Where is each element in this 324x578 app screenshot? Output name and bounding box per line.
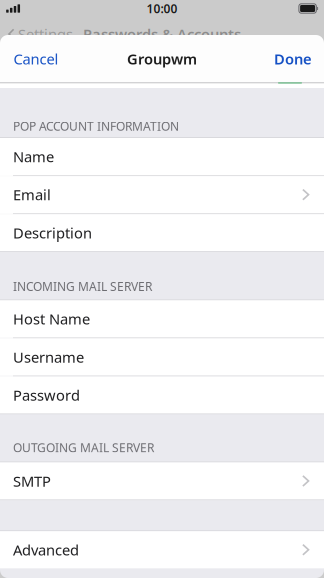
button[interactable]: Host Name xyxy=(0,300,324,337)
button[interactable]: Name xyxy=(0,138,324,175)
staticText: Cancel xyxy=(13,49,58,68)
button[interactable]: Cancel xyxy=(0,40,70,77)
button[interactable]: Email xyxy=(0,176,324,213)
button[interactable]: Done xyxy=(262,40,324,77)
staticText: 10:00 xyxy=(146,0,177,16)
staticText: Groupwm xyxy=(127,49,197,68)
button[interactable]: Password xyxy=(0,376,324,414)
staticText: Email xyxy=(13,185,51,204)
staticText: Host Name xyxy=(13,309,90,329)
staticText: SMTP xyxy=(13,471,51,491)
staticText: Username xyxy=(13,347,84,367)
staticText: Settings xyxy=(18,24,73,44)
staticText: Advanced xyxy=(13,540,79,559)
button[interactable]: SMTP xyxy=(0,462,324,499)
staticText: Description xyxy=(13,223,92,242)
button[interactable]: Advanced xyxy=(0,531,324,568)
staticText: Password xyxy=(13,385,80,405)
staticText: INCOMING MAIL SERVER xyxy=(13,278,152,294)
staticText: Done xyxy=(274,49,312,68)
staticText: POP ACCOUNT INFORMATION xyxy=(13,118,179,134)
staticText: OUTGOING MAIL SERVER xyxy=(13,440,154,455)
button[interactable]: Username xyxy=(0,338,324,375)
staticText: Name xyxy=(13,147,54,166)
staticText: Passwords & Accounts xyxy=(83,24,241,44)
button[interactable]: Description xyxy=(0,214,324,251)
